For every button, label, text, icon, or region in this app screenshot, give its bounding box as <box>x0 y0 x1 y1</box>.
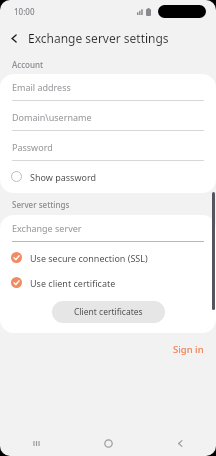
button[interactable]: Sign in <box>161 337 216 362</box>
staticText: Show password <box>30 171 96 183</box>
button[interactable]: Back <box>144 430 216 456</box>
button[interactable]: Exchange server <box>0 215 216 245</box>
staticText: Use secure connection (SSL) <box>30 252 148 264</box>
staticText: 10:00 <box>14 6 35 17</box>
button[interactable]: Back <box>0 24 28 52</box>
button[interactable]: Recents <box>0 430 72 456</box>
staticText: Exchange server <box>12 222 82 234</box>
button[interactable]: Home <box>72 430 144 456</box>
button[interactable]: Use secure connection (SSL) <box>0 245 216 270</box>
staticText: Email address <box>12 81 71 93</box>
staticText: Client certificates <box>74 306 143 318</box>
button[interactable]: Show password <box>0 164 216 189</box>
button[interactable]: Client certificates <box>52 301 165 323</box>
staticText: Use client certificate <box>30 277 116 289</box>
staticText: Exchange server settings <box>28 30 169 46</box>
button[interactable]: Domain\username <box>0 104 216 134</box>
button[interactable]: Email address <box>0 74 216 104</box>
staticText: Sign in <box>173 343 204 356</box>
button[interactable]: Use client certificate <box>0 270 216 295</box>
staticText: Password <box>12 141 53 153</box>
staticText: Account <box>12 59 44 70</box>
staticText: Server settings <box>12 199 70 210</box>
button[interactable]: Password <box>0 134 216 164</box>
staticText: Domain\username <box>12 111 92 123</box>
